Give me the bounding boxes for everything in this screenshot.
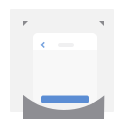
button[interactable]: Continue xyxy=(33,33,97,103)
button[interactable]: Address xyxy=(33,33,97,103)
button[interactable]: Back xyxy=(33,33,97,103)
